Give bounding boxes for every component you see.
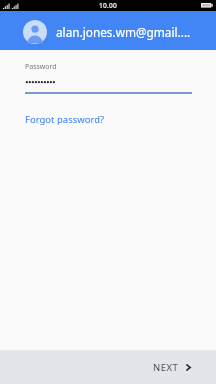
- staticText: NEXT: [153, 361, 179, 374]
- button[interactable]: NEXT: [145, 355, 199, 380]
- button[interactable]: Forgot password?: [25, 113, 105, 126]
- staticText: Password: [25, 62, 57, 72]
- staticText: Forgot password?: [25, 113, 105, 126]
- staticText: alan.jones.wm@gmail....: [56, 24, 191, 40]
- staticText: 10.00: [99, 1, 118, 10]
- button[interactable]: alan.jones.wm@gmail....: [0, 11, 216, 50]
